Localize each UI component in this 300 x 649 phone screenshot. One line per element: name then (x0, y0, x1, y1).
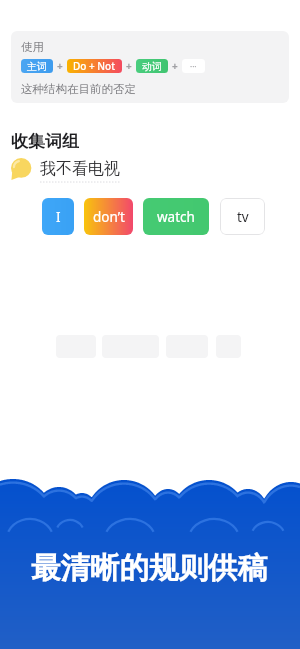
button[interactable]: 动词 (136, 59, 168, 73)
staticText: + (57, 59, 63, 73)
staticText: 使用 (21, 40, 44, 54)
staticText: 最清晰的规则供稿 (31, 550, 267, 587)
button[interactable]: Do + Not (67, 59, 122, 73)
button[interactable]: don’t (84, 198, 133, 235)
button[interactable]: 主词 (21, 59, 53, 73)
staticText: ··· (190, 61, 197, 72)
staticText: + (126, 59, 132, 73)
staticText: + (172, 59, 178, 73)
staticText: I (56, 208, 61, 226)
staticText: 这种结构在目前的否定 (21, 82, 136, 96)
staticText: 收集词组 (11, 131, 79, 152)
button[interactable]: watch (143, 198, 209, 235)
staticText: tv (237, 208, 249, 226)
button[interactable]: I (42, 198, 74, 235)
staticText: 我不看电视 (40, 159, 120, 179)
staticText: don’t (93, 208, 125, 226)
button[interactable]: tv (220, 198, 265, 235)
button[interactable]: More options (182, 59, 205, 73)
staticText: watch (157, 208, 195, 226)
staticText: 主词 (27, 60, 47, 73)
staticText: Do + Not (73, 59, 116, 73)
staticText: 动词 (142, 60, 162, 73)
